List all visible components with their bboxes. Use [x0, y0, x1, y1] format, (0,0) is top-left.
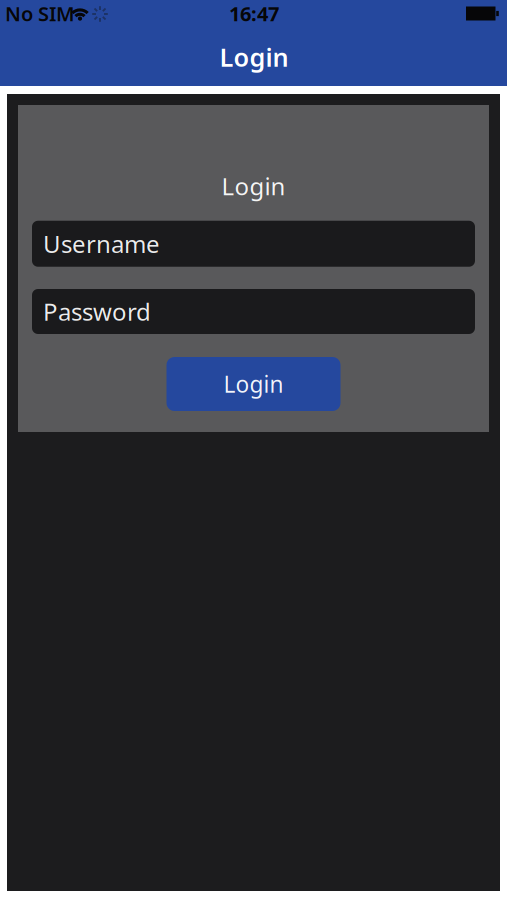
staticText: No SIM	[5, 0, 75, 27]
staticText: Login	[219, 40, 288, 74]
staticText: Username	[43, 228, 160, 260]
staticText: Login	[221, 170, 285, 202]
button[interactable]: Password	[32, 289, 475, 334]
staticText: Login	[223, 369, 283, 399]
staticText: Password	[43, 296, 151, 327]
button[interactable]: Login	[166, 357, 340, 411]
staticText: 16:47	[229, 0, 279, 27]
button[interactable]: Username	[32, 221, 475, 267]
